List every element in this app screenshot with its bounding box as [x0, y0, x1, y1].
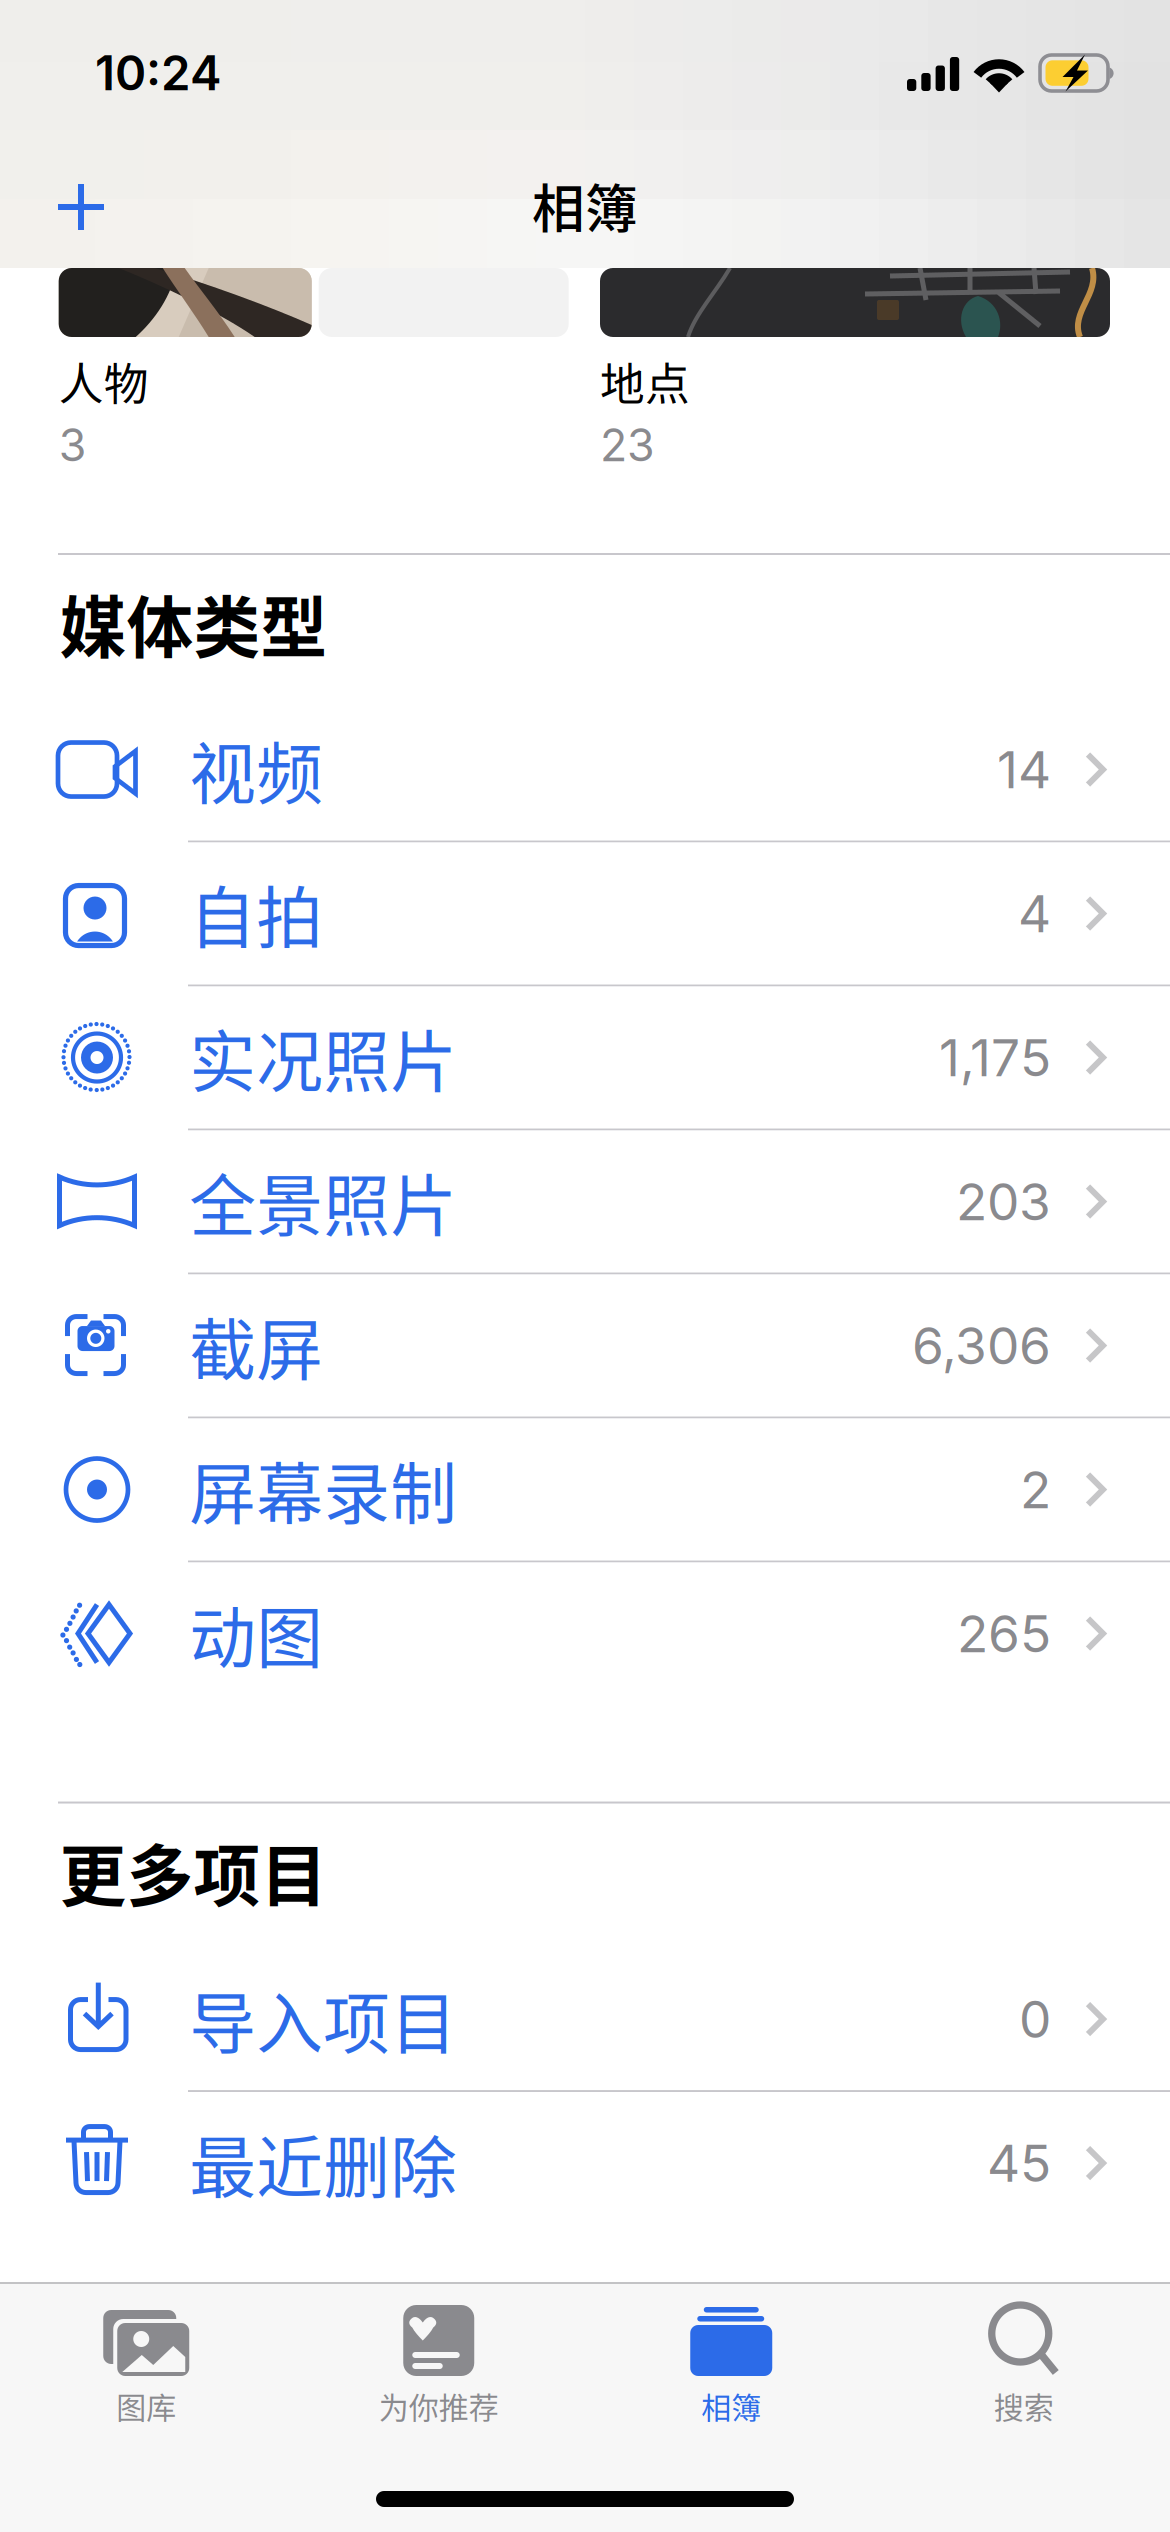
button[interactable]: 搜索 — [877, 2284, 1170, 2429]
staticText: 图库 — [116, 2384, 176, 2427]
button[interactable]: 导入项目 — [0, 1948, 1170, 2090]
staticText: 23 — [600, 418, 655, 472]
button[interactable]: 图库 — [0, 2284, 292, 2429]
button[interactable]: 截屏 — [0, 1274, 1170, 1416]
staticText: 动图 — [189, 1585, 323, 1682]
staticText: 截屏 — [189, 1297, 323, 1394]
staticText: 视频 — [189, 721, 323, 818]
staticText: 为你推荐 — [379, 2384, 499, 2427]
button[interactable]: 动图 — [0, 1562, 1170, 1704]
staticText: 搜索 — [994, 2384, 1054, 2427]
staticText: 地点 — [600, 349, 690, 413]
button[interactable]: 全景照片 — [0, 1130, 1170, 1272]
button[interactable]: 自拍 — [0, 842, 1170, 984]
staticText: 1,175 — [939, 1026, 1051, 1089]
staticText: 全景照片 — [189, 1153, 457, 1250]
staticText: 实况照片 — [189, 1009, 457, 1106]
staticText: 203 — [956, 1170, 1051, 1233]
button[interactable]: 相簿 — [585, 2284, 877, 2429]
staticText: 相簿 — [701, 2384, 761, 2427]
button[interactable]: 屏幕录制 — [0, 1418, 1170, 1560]
staticText: 0 — [1019, 1988, 1051, 2050]
staticText: 6,306 — [912, 1314, 1051, 1377]
button[interactable]: 为你推荐 — [292, 2284, 585, 2429]
staticText: 4 — [1018, 882, 1051, 945]
button[interactable]: 最近删除 — [0, 2092, 1170, 2234]
staticText: 人物 — [59, 349, 149, 413]
staticText: 更多项目 — [59, 1823, 327, 1920]
staticText: 10:24 — [95, 44, 222, 102]
staticText: 45 — [987, 2132, 1051, 2194]
staticText: 最近删除 — [189, 2115, 457, 2211]
staticText: 媒体类型 — [59, 575, 327, 671]
button[interactable]: 实况照片 — [0, 986, 1170, 1128]
staticText: 3 — [59, 418, 87, 472]
staticText: 自拍 — [189, 865, 323, 962]
staticText: 导入项目 — [189, 1971, 457, 2067]
button[interactable]: 视频 — [0, 698, 1170, 840]
staticText: 相簿 — [532, 167, 638, 243]
staticText: 14 — [997, 738, 1051, 801]
staticText: 2 — [1020, 1458, 1051, 1521]
button[interactable]: New Album — [0, 152, 140, 262]
staticText: 屏幕录制 — [189, 1441, 457, 1538]
staticText: 265 — [957, 1602, 1051, 1665]
